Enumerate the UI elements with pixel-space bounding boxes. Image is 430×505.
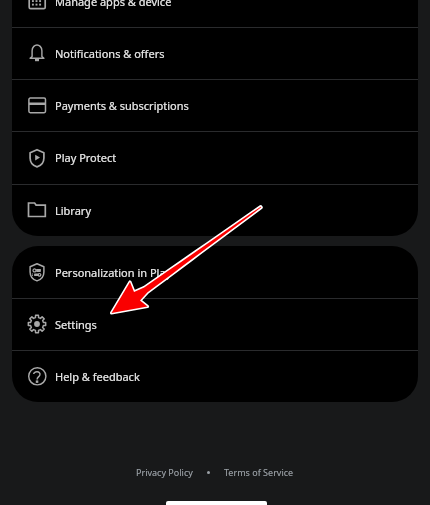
button[interactable]: Settings: [12, 298, 418, 350]
staticText: Settings: [55, 317, 97, 332]
button[interactable]: Manage apps & device: [12, 0, 418, 27]
button[interactable]: Payments & subscriptions: [12, 79, 418, 131]
button[interactable]: Help & feedback: [12, 350, 418, 402]
button[interactable]: Notifications & offers: [12, 27, 418, 79]
staticText: Play Protect: [55, 150, 117, 165]
button[interactable]: Play Protect: [12, 131, 418, 184]
button[interactable]: Privacy Policy: [136, 466, 193, 478]
staticText: Notifications & offers: [55, 46, 165, 61]
staticText: Personalization in Play: [55, 265, 172, 280]
staticText: Help & feedback: [55, 369, 140, 384]
staticText: Library: [55, 203, 92, 218]
button[interactable]: Library: [12, 184, 418, 236]
staticText: Payments & subscriptions: [55, 98, 189, 113]
button[interactable]: Terms of Service: [224, 466, 294, 478]
staticText: Manage apps & device: [55, 0, 172, 9]
button[interactable]: Personalization in Play: [12, 246, 418, 298]
